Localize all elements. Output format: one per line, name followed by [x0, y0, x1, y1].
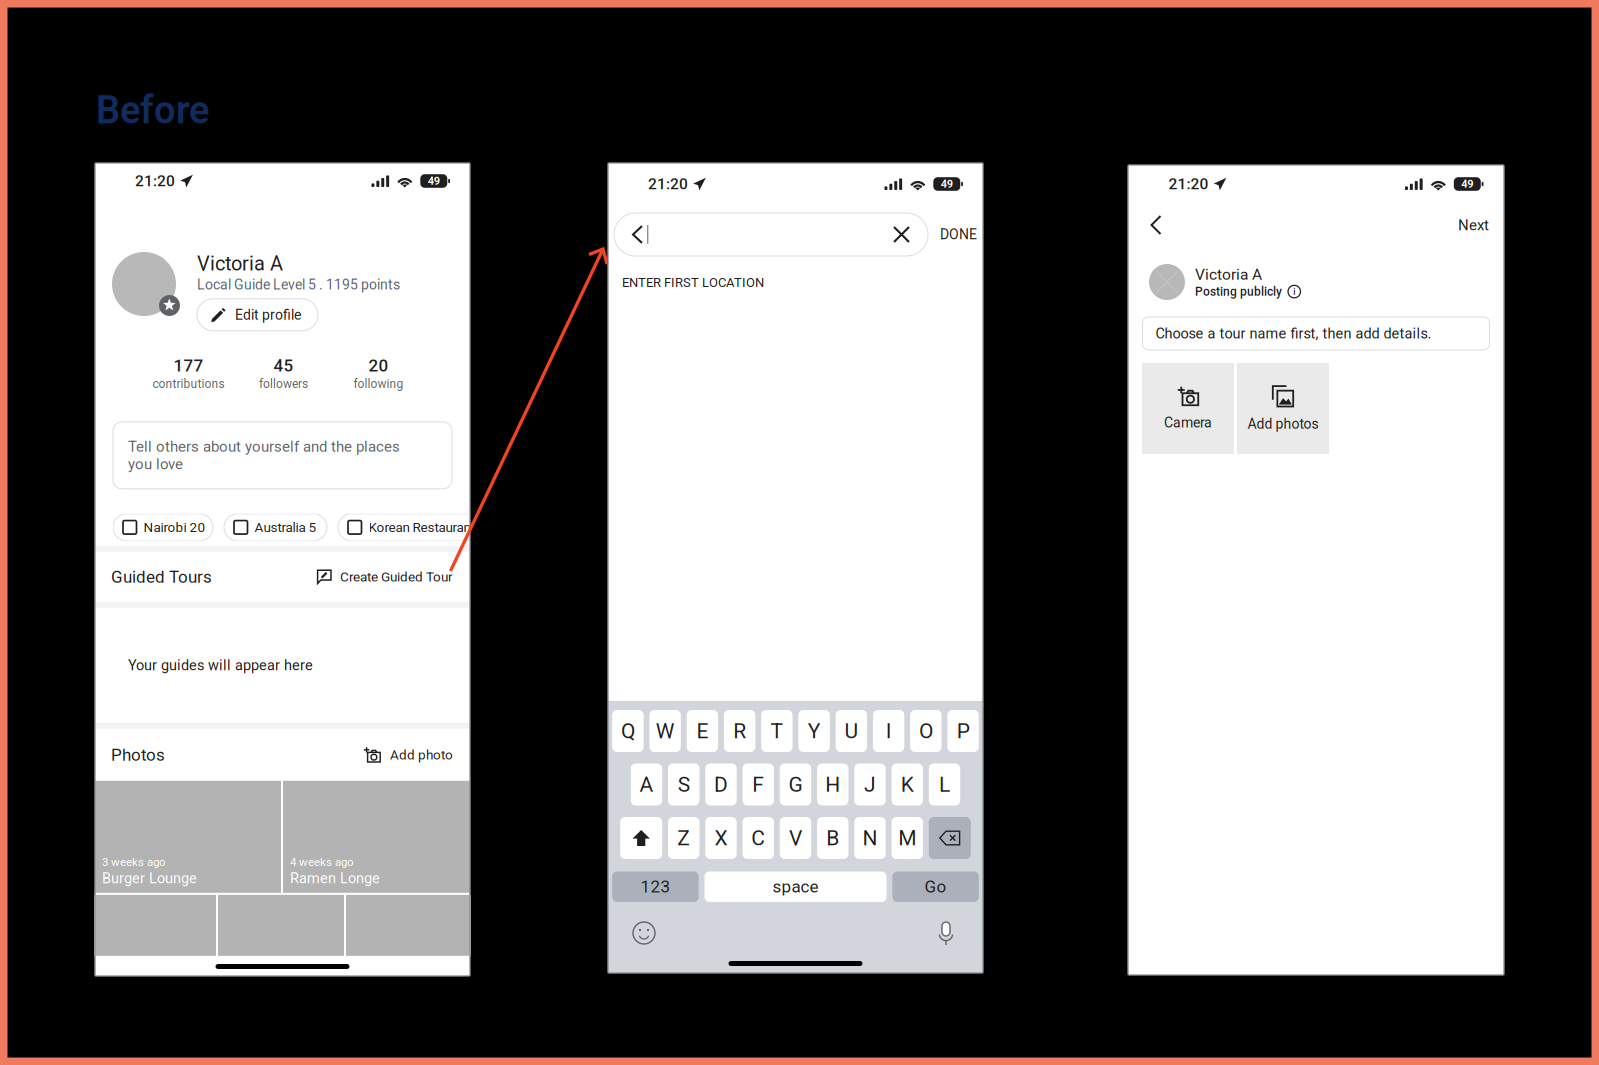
- staticText: Choose a tour name first, then add detai…: [1155, 325, 1431, 342]
- staticText: Edit profile: [235, 307, 301, 323]
- button[interactable]: C: [743, 817, 774, 859]
- button[interactable]: R: [724, 710, 755, 752]
- staticText: Camera: [1164, 415, 1212, 431]
- button[interactable]: Next: [1446, 205, 1501, 245]
- button[interactable]: DONE: [928, 213, 989, 256]
- button[interactable]: K: [891, 763, 923, 805]
- button[interactable]: space: [704, 871, 886, 902]
- staticText: Add photo: [390, 747, 453, 763]
- button[interactable]: 20: [331, 356, 426, 391]
- staticText: Guided Tours: [111, 567, 212, 587]
- button[interactable]: Nairobi 20: [113, 514, 213, 541]
- staticText: Q: [621, 719, 635, 743]
- button[interactable]: Delete: [929, 817, 971, 859]
- button[interactable]: Shift: [620, 817, 662, 859]
- button[interactable]: W: [649, 710, 681, 752]
- button[interactable]: Edit profile: [197, 299, 318, 331]
- staticText: Tell others about yourself and the place…: [128, 438, 400, 473]
- staticText: E: [696, 719, 708, 743]
- staticText: Local Guide Level 5 . 1195 points: [197, 276, 400, 293]
- button[interactable]: Q: [612, 710, 644, 752]
- button[interactable]: H: [817, 763, 848, 805]
- button[interactable]: V: [780, 817, 811, 859]
- staticText: 4 weeks ago: [290, 855, 354, 869]
- staticText: Korean Restaurants 8: [368, 519, 491, 535]
- button[interactable]: A: [631, 763, 662, 805]
- button[interactable]: O: [910, 710, 942, 752]
- staticText: I: [886, 719, 892, 743]
- staticText: following: [353, 377, 403, 391]
- button[interactable]: Choose a tour name first, then add detai…: [1142, 317, 1489, 350]
- button[interactable]: Add photo: [363, 747, 453, 763]
- staticText: M: [898, 826, 916, 850]
- button[interactable]: Back: [1136, 205, 1176, 245]
- staticText: A: [639, 772, 653, 797]
- staticText: P: [957, 719, 970, 743]
- staticText: H: [825, 772, 840, 797]
- staticText: 21:20: [648, 175, 688, 193]
- staticText: X: [714, 826, 727, 850]
- staticText: 20: [368, 356, 388, 376]
- button[interactable]: N: [854, 817, 886, 859]
- button[interactable]: 123: [612, 871, 699, 902]
- button[interactable]: D: [705, 763, 737, 805]
- staticText: 21:20: [135, 172, 175, 190]
- button[interactable]: Dictation: [929, 918, 963, 948]
- staticText: N: [862, 826, 877, 850]
- staticText: Ramen Longe: [290, 870, 380, 887]
- staticText: 49: [428, 175, 440, 187]
- button[interactable]: Add photos: [1237, 363, 1329, 454]
- staticText: Posting publicly: [1195, 285, 1282, 299]
- button[interactable]: 45: [236, 356, 331, 391]
- staticText: DONE: [940, 226, 977, 243]
- button[interactable]: Emoji keyboard: [627, 918, 661, 948]
- staticText: Victoria A: [197, 252, 283, 275]
- button[interactable]: E: [687, 710, 718, 752]
- button[interactable]: Korean Restaurants 8: [338, 514, 498, 541]
- button[interactable]: Go: [892, 871, 979, 902]
- staticText: L: [939, 772, 950, 797]
- button[interactable]: U: [836, 710, 867, 752]
- staticText: Your guides will appear here: [128, 657, 313, 674]
- staticText: Before: [96, 88, 209, 132]
- staticText: 49: [1461, 178, 1473, 190]
- button[interactable]: Tell others about yourself and the place…: [113, 422, 452, 489]
- staticText: O: [919, 719, 933, 743]
- staticText: Photos: [111, 745, 165, 765]
- button[interactable]: S: [668, 763, 699, 805]
- button[interactable]: T: [761, 710, 793, 752]
- button[interactable]: Camera: [1142, 363, 1234, 454]
- button[interactable]: B: [817, 817, 848, 859]
- button[interactable]: X: [705, 817, 737, 859]
- button[interactable]: Z: [668, 817, 699, 859]
- button[interactable]: F: [742, 763, 774, 805]
- staticText: Create Guided Tour: [340, 569, 453, 585]
- staticText: D: [714, 772, 728, 797]
- button[interactable]: P: [947, 710, 979, 752]
- staticText: Burger Lounge: [102, 870, 197, 887]
- staticText: Z: [677, 826, 690, 850]
- staticText: 45: [273, 356, 293, 376]
- button[interactable]: [614, 213, 928, 256]
- button[interactable]: G: [780, 763, 811, 805]
- button[interactable]: L: [929, 763, 960, 805]
- button[interactable]: Australia 5: [224, 514, 327, 541]
- staticText: i: [1293, 286, 1295, 297]
- staticText: Nairobi 20: [143, 519, 205, 535]
- staticText: T: [770, 719, 783, 743]
- staticText: 3 weeks ago: [102, 855, 166, 869]
- button[interactable]: I: [873, 710, 904, 752]
- staticText: contributions: [152, 377, 224, 391]
- staticText: 177: [173, 356, 203, 376]
- button[interactable]: Create Guided Tour: [317, 569, 453, 585]
- staticText: K: [901, 772, 914, 797]
- staticText: 49: [941, 178, 953, 190]
- staticText: Victoria A: [1195, 265, 1262, 284]
- staticText: W: [656, 719, 675, 743]
- staticText: V: [789, 826, 802, 850]
- staticText: Australia 5: [254, 519, 316, 535]
- button[interactable]: Y: [798, 710, 830, 752]
- button[interactable]: M: [892, 817, 923, 859]
- button[interactable]: J: [854, 763, 886, 805]
- button[interactable]: 177: [141, 356, 236, 391]
